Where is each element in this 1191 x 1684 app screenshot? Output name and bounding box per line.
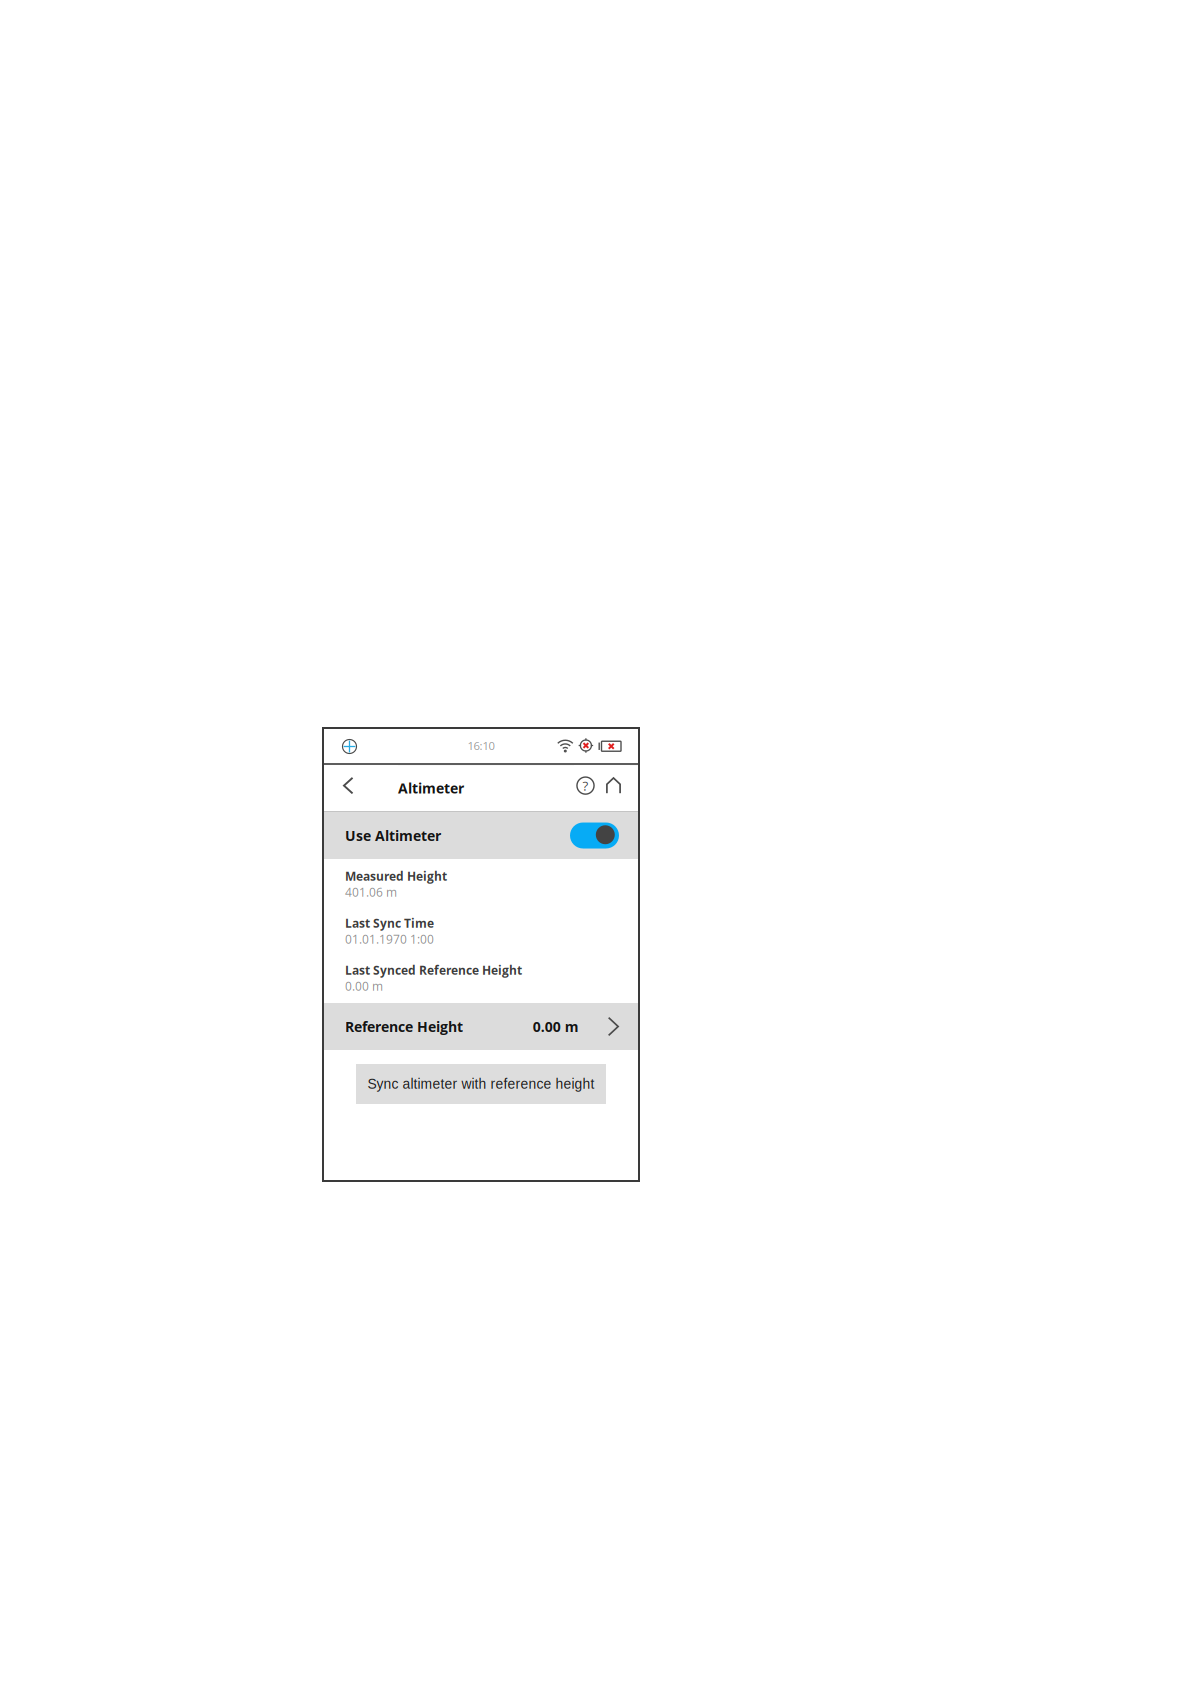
staticText: 0.00 m bbox=[533, 1017, 579, 1036]
staticText: ? bbox=[582, 776, 588, 795]
staticText: 16:10 bbox=[467, 738, 494, 753]
staticText: Altimeter bbox=[398, 779, 464, 798]
staticText: Use Altimeter bbox=[345, 826, 441, 845]
staticText: Reference Height bbox=[345, 1017, 463, 1036]
staticText: 401.06 m bbox=[345, 884, 397, 900]
button[interactable]: Sync altimeter with reference height bbox=[356, 1064, 606, 1104]
button[interactable]: Home bbox=[597, 765, 630, 811]
staticText: Last Synced Reference Height bbox=[345, 962, 522, 978]
staticText: Last Sync Time bbox=[345, 915, 434, 931]
staticText: Sync altimeter with reference height bbox=[367, 1076, 594, 1092]
button[interactable]: Reference Height bbox=[323, 1003, 639, 1050]
button[interactable]: Use Altimeter bbox=[323, 812, 639, 859]
staticText: 0.00 m bbox=[345, 978, 383, 994]
button[interactable]: Help bbox=[574, 765, 597, 811]
staticText: 01.01.1970 1:00 bbox=[345, 931, 434, 947]
button[interactable]: Back bbox=[323, 765, 398, 811]
staticText: Measured Height bbox=[345, 868, 447, 884]
